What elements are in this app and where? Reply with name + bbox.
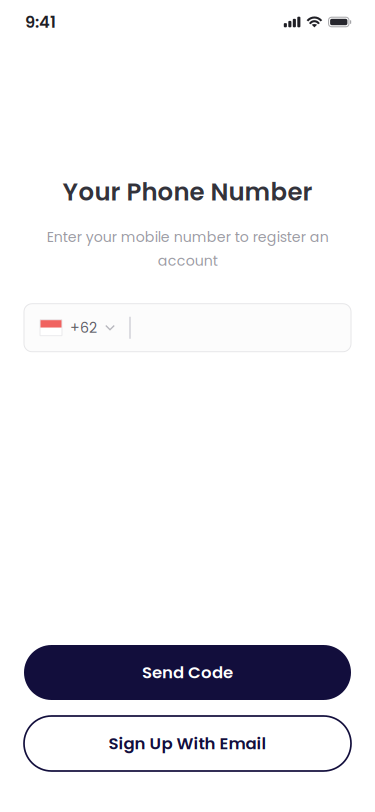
- button[interactable]: Send Code: [24, 645, 351, 700]
- staticText: +62: [70, 318, 97, 338]
- button[interactable]: Select country calling code: [40, 304, 115, 352]
- staticText: Enter your mobile number to register an …: [46, 227, 328, 271]
- staticText: Send Code: [142, 661, 233, 684]
- staticText: 9:41: [25, 11, 56, 33]
- button[interactable]: Sign Up With Email: [24, 716, 351, 771]
- staticText: Your Phone Number: [62, 175, 312, 209]
- staticText: Sign Up With Email: [108, 732, 266, 755]
